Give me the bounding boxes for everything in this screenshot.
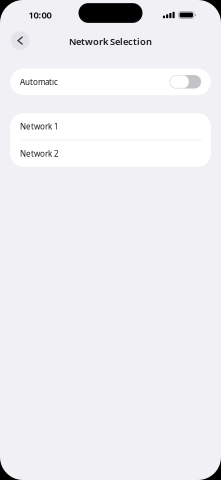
staticText: Network Selection	[69, 35, 152, 47]
staticText: Network 1	[20, 121, 59, 132]
staticText: Automatic	[20, 76, 58, 87]
button[interactable]: Automatic	[10, 68, 211, 95]
button[interactable]: Back	[11, 31, 30, 50]
staticText: Network 2	[20, 148, 59, 159]
button[interactable]: Network 2	[10, 140, 211, 167]
staticText: 10:00	[28, 9, 51, 21]
button[interactable]: Network 1	[10, 113, 211, 140]
